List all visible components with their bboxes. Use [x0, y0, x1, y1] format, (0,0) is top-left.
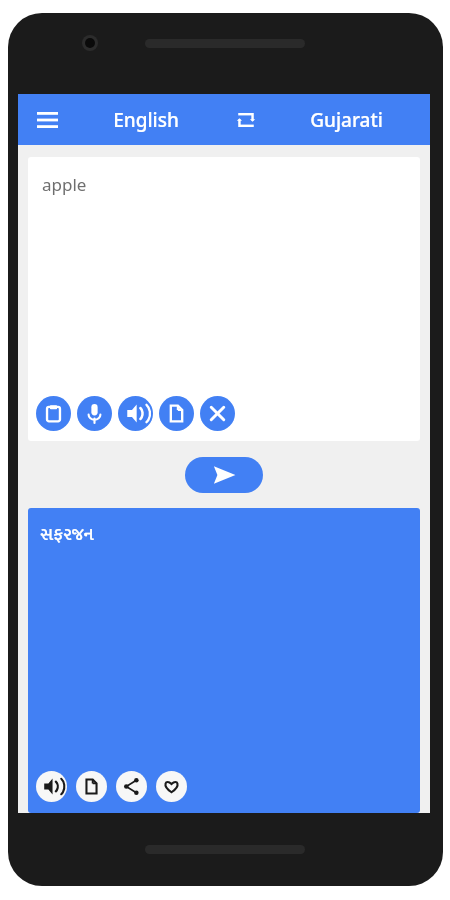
button[interactable]: Voice input	[77, 396, 112, 431]
button[interactable]: Add to favorites	[156, 771, 187, 802]
button[interactable]: Open menu	[28, 101, 66, 139]
button[interactable]: apple	[28, 157, 420, 441]
staticText: English	[113, 107, 179, 133]
button[interactable]: Swap languages	[225, 99, 267, 141]
staticText: Gujarati	[310, 107, 383, 133]
button[interactable]: Speak text	[118, 396, 153, 431]
button[interactable]: English	[66, 94, 225, 145]
button[interactable]: Gujarati	[267, 94, 426, 145]
button[interactable]: Copy text	[159, 396, 194, 431]
button[interactable]: Translate	[185, 457, 263, 493]
button[interactable]: Speak translation	[36, 771, 67, 802]
staticText: સફરજન	[40, 520, 94, 550]
button[interactable]: Share translation	[116, 771, 147, 802]
button[interactable]: Copy translation	[76, 771, 107, 802]
button[interactable]: Paste	[36, 396, 71, 431]
button[interactable]: સફરજન	[28, 508, 420, 813]
button[interactable]: Clear text	[200, 396, 235, 431]
staticText: apple	[42, 173, 87, 196]
